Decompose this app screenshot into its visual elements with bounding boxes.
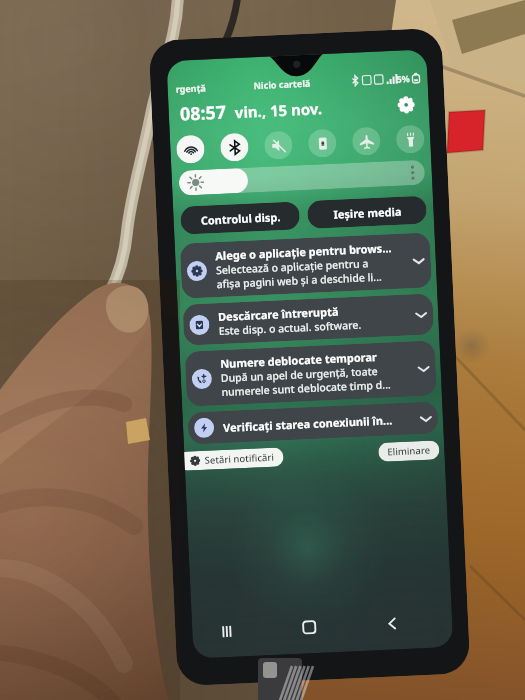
staticText: Alege o aplicație pentru brows...	[215, 240, 392, 263]
button[interactable]: Bluetooth	[220, 133, 249, 162]
button[interactable]: Expand	[409, 252, 427, 269]
button[interactable]: Airplane mode	[352, 127, 381, 156]
staticText: numerele sunt deblocate timp d...	[221, 377, 392, 399]
button[interactable]: Flashlight	[396, 125, 425, 154]
staticText: Setări notificări	[204, 451, 275, 467]
button[interactable]: Expand	[414, 359, 432, 377]
button[interactable]: Verificați starea conexiunii în...	[187, 401, 439, 445]
button[interactable]: Home	[297, 615, 322, 640]
button[interactable]: Descărcare întreruptă	[182, 293, 434, 346]
button[interactable]: Settings	[393, 92, 418, 117]
staticText: 5%	[396, 72, 411, 85]
staticText: Numere deblocate temporar	[220, 349, 377, 371]
staticText: Descărcare întreruptă	[218, 304, 339, 324]
staticText: 08:57	[179, 99, 227, 127]
button[interactable]: Sound off	[264, 131, 293, 160]
staticText: vin., 15 nov.	[234, 98, 323, 122]
button[interactable]: Wi-Fi	[176, 135, 205, 164]
button[interactable]: Numere deblocate temporar	[185, 340, 437, 407]
staticText: Este disp. o actual. software.	[218, 318, 362, 338]
staticText: Nicio cartelă	[253, 77, 311, 91]
staticText: După un apel de urgență, toate	[220, 364, 378, 385]
button[interactable]: Setări notificări	[184, 447, 284, 471]
button[interactable]: Auto rotate	[308, 129, 337, 158]
staticText: Ieșire media	[333, 204, 402, 222]
staticText: Eliminare	[387, 444, 431, 458]
button[interactable]: Brightness	[178, 160, 425, 196]
staticText: rgență	[175, 81, 207, 95]
button[interactable]: Back	[380, 611, 405, 636]
button[interactable]: Recents	[214, 618, 239, 644]
button[interactable]: Eliminare	[378, 440, 440, 462]
button[interactable]: Controlul disp.	[180, 201, 300, 235]
staticText: Controlul disp.	[200, 209, 281, 228]
button[interactable]: Alege o aplicație pentru brows...	[180, 232, 432, 299]
staticText: Selectează o aplicație pentru a	[216, 256, 369, 277]
button[interactable]: Expand	[412, 305, 430, 323]
staticText: afișa pagini web și a deschide li...	[216, 270, 383, 291]
staticText: Verificați starea conexiunii în...	[223, 412, 393, 435]
button[interactable]: Ieșire media	[307, 196, 427, 229]
button[interactable]: Expand	[416, 409, 434, 427]
